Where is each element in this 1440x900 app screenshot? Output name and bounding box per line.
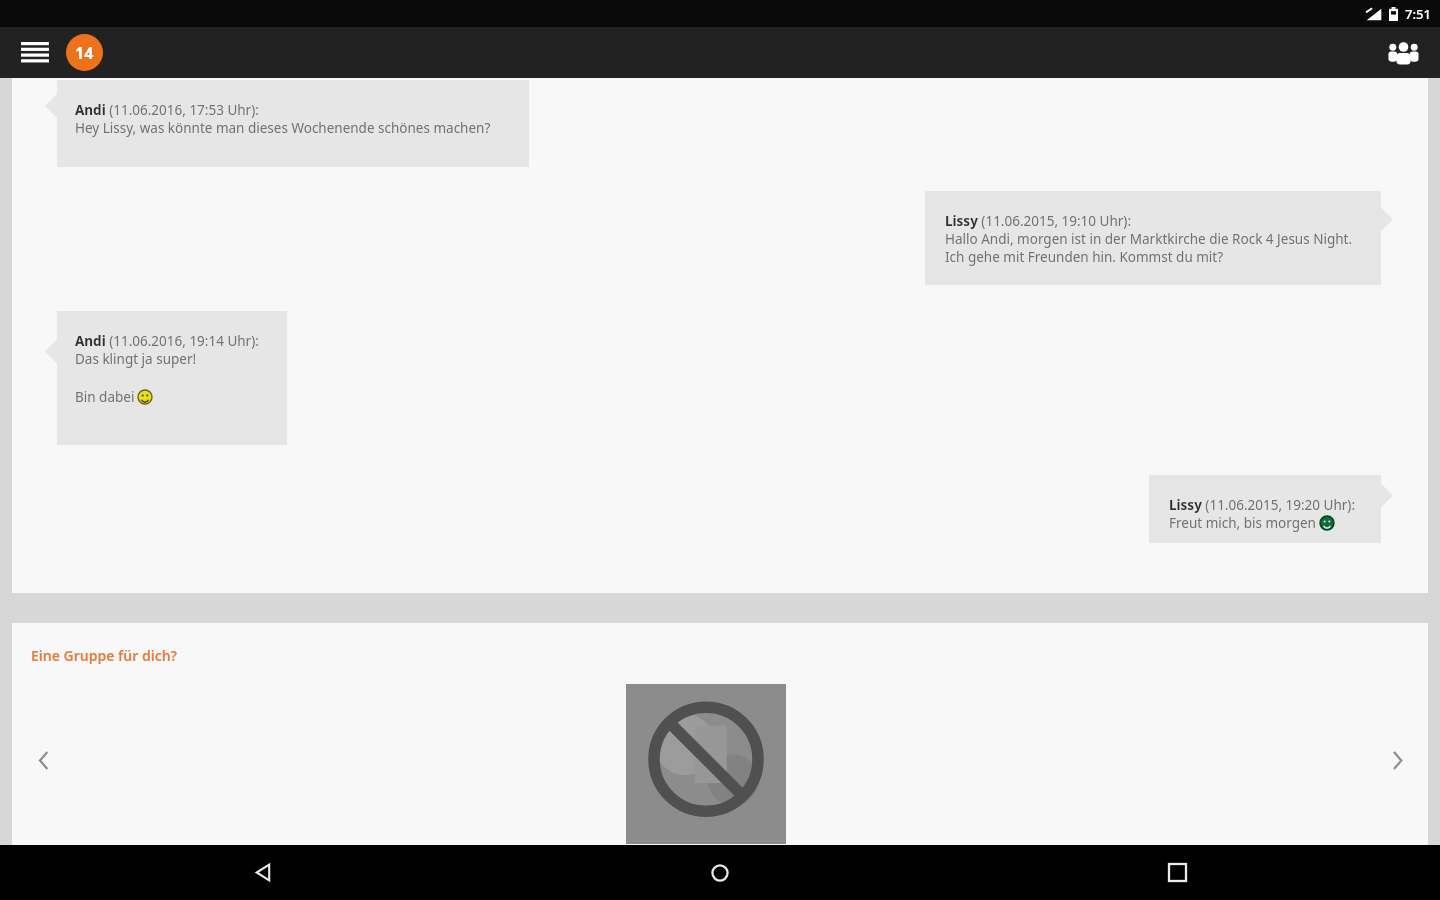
button[interactable]: Next group — [1377, 740, 1417, 780]
button[interactable]: Image not available — [626, 684, 786, 844]
staticText: Lissy (11.06.2015, 19:10 Uhr): — [945, 212, 1132, 230]
staticText: Bin dabei — [75, 388, 138, 406]
staticText: 7:51 — [1405, 5, 1431, 23]
button[interactable]: 14 — [66, 34, 103, 71]
button[interactable]: Lissy (11.06.2015, 19:20 Uhr): — [1149, 475, 1393, 543]
button[interactable]: Group members — [1380, 30, 1426, 76]
staticText: Andi (11.06.2016, 17:53 Uhr): — [75, 101, 259, 119]
button[interactable]: Eine Gruppe für dich? — [31, 646, 178, 665]
button[interactable]: Recent apps — [1148, 845, 1206, 900]
button[interactable]: Open navigation menu — [12, 30, 58, 76]
staticText: Lissy (11.06.2015, 19:20 Uhr): — [1169, 496, 1356, 514]
button[interactable]: Previous group — [23, 740, 63, 780]
staticText: Hallo Andi, morgen ist in der Marktkirch… — [945, 230, 1353, 248]
button[interactable]: Back — [234, 845, 292, 900]
staticText: Eine Gruppe für dich? — [31, 646, 178, 665]
staticText: Das klingt ja super! — [75, 350, 197, 368]
button[interactable]: Lissy (11.06.2015, 19:10 Uhr): — [925, 191, 1393, 285]
button[interactable]: Andi (11.06.2016, 19:14 Uhr): — [45, 311, 287, 445]
button[interactable]: Home — [691, 845, 749, 900]
staticText: Ich gehe mit Freunden hin. Kommst du mit… — [945, 248, 1224, 266]
staticText: 14 — [75, 42, 94, 64]
staticText: Freut mich, bis morgen — [1169, 514, 1320, 532]
staticText: Andi (11.06.2016, 19:14 Uhr): — [75, 332, 259, 350]
button[interactable]: Andi (11.06.2016, 17:53 Uhr): — [45, 80, 529, 167]
staticText: Hey Lissy, was könnte man dieses Wochene… — [75, 119, 491, 137]
